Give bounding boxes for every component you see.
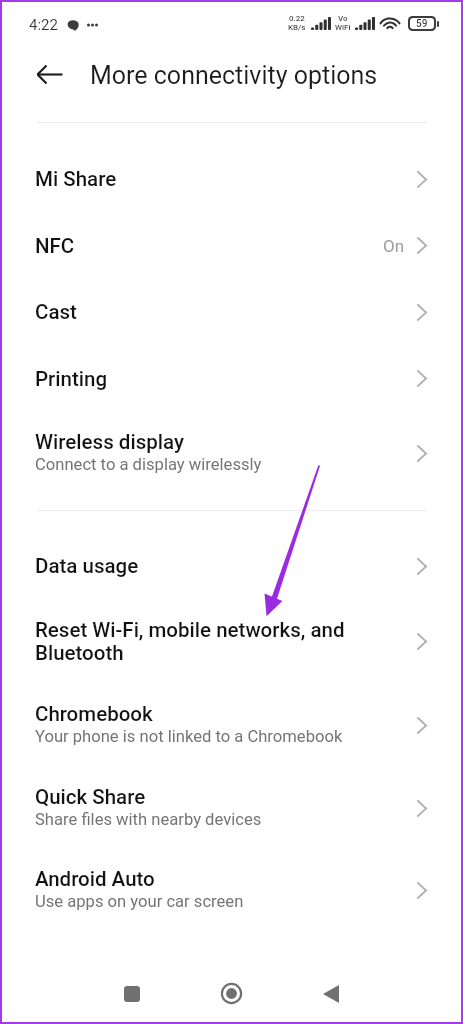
staticText: Data usage — [35, 554, 139, 578]
staticText: Your phone is not linked to a Chromebook — [35, 727, 343, 746]
staticText: Cast — [35, 300, 77, 324]
staticText: Share files with nearby devices — [35, 810, 262, 829]
staticText: 0.22 — [289, 14, 305, 23]
staticText: Printing — [35, 367, 108, 391]
staticText: Quick Share — [35, 785, 146, 809]
staticText: Mi Share — [35, 167, 117, 191]
staticText: Wireless display — [35, 430, 184, 454]
button[interactable]: Printing — [2, 345, 461, 412]
staticText: 4:22 — [29, 16, 58, 34]
button[interactable]: Cast — [2, 279, 461, 345]
staticText: NFC — [35, 234, 75, 258]
button[interactable]: Home — [208, 970, 254, 1016]
button[interactable]: Reset Wi-Fi, mobile networks, and Blueto… — [2, 599, 461, 683]
staticText: On — [383, 236, 405, 256]
button[interactable]: Quick Share — [2, 767, 461, 849]
button[interactable]: Wireless display — [2, 412, 461, 495]
button[interactable]: Android Auto — [2, 849, 461, 932]
staticText: Connect to a display wirelessly — [35, 455, 262, 474]
button[interactable]: NFC — [2, 212, 461, 279]
button[interactable]: Data usage — [2, 533, 461, 599]
staticText: Chromebook — [35, 702, 153, 726]
button[interactable]: Recent apps — [109, 971, 155, 1017]
staticText: More connectivity options — [90, 61, 378, 90]
button[interactable]: Back — [308, 971, 354, 1017]
staticText: Reset Wi-Fi, mobile networks, and Blueto… — [35, 618, 417, 665]
button[interactable]: Chromebook — [2, 683, 461, 767]
staticText: 59 — [416, 18, 428, 29]
staticText: WiFi — [335, 23, 351, 32]
button[interactable]: Back — [28, 52, 72, 96]
staticText: Use apps on your car screen — [35, 892, 244, 911]
staticText: KB/s — [288, 23, 306, 32]
staticText: Vo — [338, 14, 348, 23]
button[interactable]: Mi Share — [2, 146, 461, 212]
staticText: Android Auto — [35, 867, 155, 891]
